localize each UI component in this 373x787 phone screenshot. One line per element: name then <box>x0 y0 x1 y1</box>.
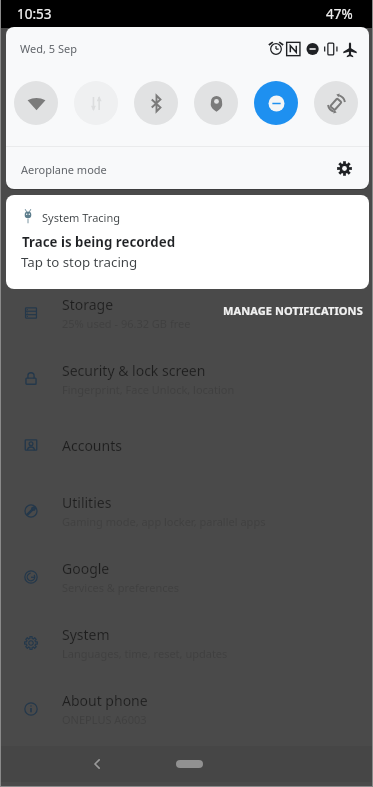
staticText: Aeroplane mode <box>21 162 107 177</box>
staticText: uses Screen navigation gestures <box>61 173 213 187</box>
button[interactable]: Bluetooth <box>134 81 178 125</box>
button[interactable]: Location <box>194 81 238 125</box>
button[interactable]: Utilities <box>1 478 372 544</box>
staticText: System <box>62 625 110 644</box>
staticText: MANAGE NOTIFICATIONS <box>223 303 363 318</box>
button[interactable]: Home <box>161 746 217 782</box>
staticText: System Tracing <box>42 210 120 225</box>
staticText: Accounts <box>62 436 122 455</box>
button[interactable]: Storage <box>1 280 372 346</box>
staticText: 47% <box>326 5 353 23</box>
staticText: About phone <box>62 691 148 710</box>
button[interactable]: Back <box>79 746 115 782</box>
button[interactable]: Accounts <box>1 412 372 478</box>
staticText: Tap to stop tracing <box>21 253 138 271</box>
staticText: Storage <box>62 295 114 314</box>
button[interactable]: MANAGE NOTIFICATIONS <box>215 296 371 325</box>
button[interactable]: System Tracing <box>6 195 369 289</box>
staticText: ONEPLUS A6003 <box>62 712 147 727</box>
button[interactable]: Security & lock screen <box>1 346 372 412</box>
staticText: Wed, 5 Sep <box>20 41 77 56</box>
button[interactable]: About phone <box>1 676 372 742</box>
staticText: Google <box>62 559 110 578</box>
button[interactable]: Auto rotate <box>314 81 358 125</box>
button[interactable]: Wi-Fi <box>14 81 58 125</box>
button[interactable]: Do not disturb <box>254 81 298 125</box>
button[interactable]: Google <box>1 544 372 610</box>
staticText: Trace is being recorded <box>22 233 176 251</box>
staticText: 10:53 <box>17 5 52 23</box>
button[interactable]: Mobile data <box>74 81 118 125</box>
staticText: Security & lock screen <box>62 361 206 380</box>
button[interactable]: Settings <box>331 155 357 181</box>
button[interactable]: System <box>1 610 372 676</box>
staticText: Utilities <box>62 493 112 512</box>
